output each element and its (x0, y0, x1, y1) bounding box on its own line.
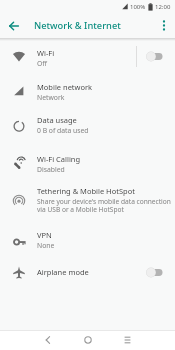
button[interactable]: Tethering & Mobile HotSpot (0, 180, 175, 220)
button[interactable]: Wi-Fi (0, 41, 175, 74)
button[interactable] (40, 332, 56, 348)
staticText: Disabled (37, 165, 65, 174)
staticText: Wi-Fi (37, 48, 55, 58)
button[interactable]: Airplane mode (0, 257, 175, 287)
button[interactable]: Mobile network (0, 75, 175, 108)
staticText: Data usage (37, 115, 77, 125)
button[interactable]: VPN (0, 223, 175, 256)
button[interactable] (146, 51, 163, 62)
staticText: Tethering & Mobile HotSpot (37, 186, 135, 196)
staticText: Off (37, 59, 47, 68)
button[interactable]: Wi-Fi Calling (0, 147, 175, 180)
staticText: Share your device's mobile data connecti… (37, 197, 171, 214)
staticText: Wi-Fi Calling (37, 154, 81, 164)
button[interactable] (119, 332, 135, 348)
staticText: 100% (130, 3, 146, 11)
staticText: Mobile network (37, 82, 93, 92)
button[interactable]: Data usage (0, 108, 175, 141)
button[interactable] (80, 332, 96, 348)
button[interactable] (146, 267, 163, 278)
staticText: Network (37, 93, 65, 102)
staticText: 12:00 (155, 3, 171, 11)
staticText: VPN (37, 230, 52, 240)
staticText: Network & Internet (34, 19, 121, 32)
staticText: None (37, 241, 55, 250)
staticText: Airplane mode (37, 267, 89, 277)
button[interactable] (157, 19, 171, 33)
button[interactable] (6, 18, 22, 34)
staticText: 0 B of data used (37, 126, 89, 135)
